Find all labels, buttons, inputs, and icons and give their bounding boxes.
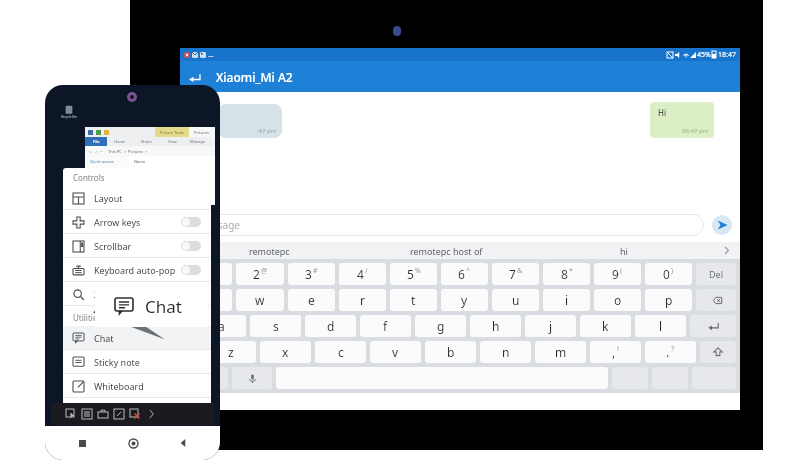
staticText: This PC > Pictures > (108, 149, 148, 154)
button[interactable]: Voice input (232, 367, 272, 389)
button[interactable]: Enter (690, 315, 736, 337)
staticText: p (665, 292, 673, 308)
button[interactable]: j (525, 315, 576, 337)
button[interactable]: d (305, 315, 356, 337)
staticText: 45% (697, 50, 711, 60)
staticText: 3 (305, 266, 312, 282)
button[interactable]: More suggestions (712, 242, 740, 259)
button[interactable]: Pointer (63, 406, 79, 422)
staticText: Name (134, 159, 146, 164)
staticText: 1 (205, 266, 212, 282)
button[interactable]: n (480, 341, 531, 363)
button[interactable]: Back (170, 430, 196, 456)
button[interactable]: u (492, 289, 539, 311)
button[interactable]: Back (180, 63, 208, 91)
button[interactable]: v (370, 341, 421, 363)
button[interactable]: Home (120, 430, 146, 456)
button[interactable]: 1 (184, 263, 232, 285)
button[interactable]: 9 (594, 263, 641, 285)
button[interactable]: h (470, 315, 521, 337)
staticText: 0 (663, 266, 670, 282)
button[interactable]: z (206, 341, 256, 363)
button[interactable]: Arrow keys (63, 210, 211, 234)
staticText: l (659, 318, 663, 334)
staticText: Chat (94, 332, 114, 344)
staticText: Xiaomi_Mi A2 (216, 69, 293, 85)
button[interactable]: 4 (339, 263, 386, 285)
button[interactable]: Shift (700, 341, 736, 363)
staticText: message (198, 218, 240, 232)
button[interactable]: 2 (236, 263, 284, 285)
button[interactable]: message (188, 214, 704, 236)
button[interactable]: 3 (288, 263, 335, 285)
button[interactable]: t (390, 289, 437, 311)
button[interactable]: m (535, 341, 586, 363)
staticText: 2 (253, 266, 260, 282)
button[interactable]: c (315, 341, 366, 363)
button[interactable]: q (184, 289, 232, 311)
button[interactable]: . (645, 341, 696, 363)
button[interactable]: Toolbox (95, 406, 111, 422)
button[interactable]: a (196, 315, 246, 337)
button[interactable]: 7 (492, 263, 539, 285)
button[interactable]: Chat (95, 285, 208, 327)
button[interactable]: Whiteboard (63, 374, 211, 398)
button[interactable]: y (441, 289, 488, 311)
button[interactable]: o (594, 289, 641, 311)
button[interactable]: remotepc (180, 242, 358, 259)
button[interactable]: b (425, 341, 476, 363)
staticText: Chat (145, 295, 182, 318)
button[interactable]: , (590, 341, 641, 363)
button[interactable]: 6 (441, 263, 488, 285)
button[interactable]: remotepc host of (358, 242, 535, 259)
button[interactable]: k (580, 315, 631, 337)
button[interactable]: Chat (63, 326, 211, 350)
button[interactable]: Close session (127, 406, 143, 422)
button[interactable]: f (360, 315, 411, 337)
button[interactable]: Recents (69, 430, 95, 456)
staticText: o (614, 292, 622, 308)
button[interactable]: s (250, 315, 301, 337)
staticText: u (512, 292, 520, 308)
button[interactable]: Share screen (111, 406, 127, 422)
button[interactable]: l (635, 315, 686, 337)
staticText: , (612, 344, 616, 360)
button[interactable]: 8 (543, 263, 590, 285)
staticText: remotepc host of (410, 245, 483, 257)
button[interactable]: p (645, 289, 692, 311)
staticText: Manage (190, 139, 206, 144)
staticText: View (168, 139, 177, 144)
button[interactable]: Symbols (184, 367, 228, 389)
button[interactable]: Layout (63, 186, 211, 210)
button[interactable]: 5 (390, 263, 437, 285)
button[interactable]: x (260, 341, 311, 363)
button[interactable]: Send (710, 213, 734, 237)
staticText: # (313, 266, 318, 276)
button[interactable]: Zoom (63, 282, 211, 306)
button[interactable]: r (339, 289, 386, 311)
staticText: q (204, 292, 212, 308)
staticText: File (93, 139, 100, 144)
staticText: Picture Tools (160, 130, 184, 135)
staticText: ! (617, 344, 619, 354)
button[interactable]: Keyboard auto-pop (63, 258, 211, 282)
button[interactable]: Keyboard (79, 406, 95, 422)
button[interactable]: 0 (645, 263, 692, 285)
button[interactable]: Scrollbar (63, 234, 211, 258)
staticText: 8 (561, 266, 568, 282)
staticText: hi (620, 245, 628, 257)
button[interactable]: Del (696, 263, 736, 285)
button[interactable]: i (543, 289, 590, 311)
button[interactable]: g (415, 315, 466, 337)
button[interactable]: Backspace (696, 289, 736, 311)
button[interactable]: hi (535, 242, 712, 259)
button[interactable]: w (236, 289, 284, 311)
button[interactable]: Sticky note (63, 350, 211, 374)
button[interactable]: e (288, 289, 335, 311)
button[interactable]: Expand toolbar (143, 406, 159, 422)
staticText: Controls (73, 172, 105, 183)
